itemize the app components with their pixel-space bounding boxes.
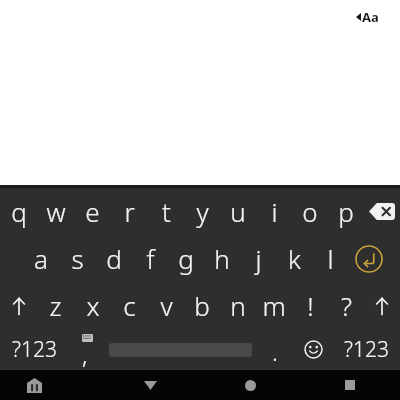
staticText: Aa	[362, 8, 379, 26]
staticText: e	[85, 194, 100, 229]
button[interactable]: j	[240, 235, 276, 282]
button[interactable]: s	[59, 235, 96, 282]
staticText: j	[255, 241, 262, 276]
staticText: g	[178, 241, 194, 276]
staticText: w	[46, 194, 66, 229]
staticText: x	[86, 288, 100, 323]
staticText: ?123	[344, 335, 389, 364]
button[interactable]: ,	[68, 329, 105, 370]
button[interactable]: p	[328, 188, 364, 235]
button[interactable]: i	[256, 188, 292, 235]
button[interactable]: v	[148, 282, 184, 329]
button[interactable]: w	[37, 188, 74, 235]
staticText: f	[146, 241, 155, 276]
staticText: q	[11, 194, 27, 229]
button[interactable]: Home	[200, 370, 300, 400]
button[interactable]: Enter	[348, 235, 389, 282]
button[interactable]: ?123	[0, 329, 68, 370]
button[interactable]: k	[276, 235, 312, 282]
button[interactable]: e	[74, 188, 111, 235]
staticText: h	[214, 241, 230, 276]
staticText: u	[230, 194, 246, 229]
staticText: y	[196, 194, 209, 229]
button[interactable]: Recent apps	[300, 370, 400, 400]
button[interactable]: m	[256, 282, 292, 329]
staticText: o	[302, 194, 318, 229]
button[interactable]: q	[0, 188, 37, 235]
staticText: !	[307, 288, 314, 323]
button[interactable]: Text size	[356, 8, 379, 26]
staticText: p	[338, 194, 354, 229]
button[interactable]: r	[111, 188, 148, 235]
staticText: t	[162, 194, 171, 229]
button[interactable]: .	[256, 329, 293, 370]
staticText: v	[160, 288, 173, 323]
button[interactable]: ?	[328, 282, 364, 329]
button[interactable]: b	[184, 282, 220, 329]
button[interactable]: f	[132, 235, 168, 282]
staticText: k	[288, 241, 301, 276]
staticText: ?123	[12, 335, 57, 364]
button[interactable]: d	[96, 235, 132, 282]
button[interactable]: Switch keyboard	[0, 370, 100, 400]
button[interactable]: y	[184, 188, 220, 235]
button[interactable]: !	[292, 282, 328, 329]
staticText: l	[327, 241, 334, 276]
button[interactable]: Emoji	[293, 329, 333, 370]
button[interactable]: Shift	[0, 282, 37, 329]
staticText: s	[71, 241, 84, 276]
button[interactable]: x	[74, 282, 111, 329]
button[interactable]: Shift	[364, 282, 400, 329]
button[interactable]: c	[111, 282, 148, 329]
button[interactable]: h	[204, 235, 240, 282]
staticText: z	[49, 288, 62, 323]
staticText: a	[34, 241, 48, 276]
button[interactable]: t	[148, 188, 184, 235]
staticText: b	[194, 288, 210, 323]
button[interactable]: o	[292, 188, 328, 235]
staticText: i	[271, 194, 278, 229]
staticText: n	[230, 288, 246, 323]
button[interactable]: Backspace	[364, 188, 400, 235]
button[interactable]: Back	[100, 370, 200, 400]
staticText: r	[124, 194, 135, 229]
staticText: d	[106, 241, 122, 276]
staticText: c	[123, 288, 136, 323]
staticText: ?	[341, 288, 352, 323]
button[interactable]: z	[37, 282, 74, 329]
button[interactable]: ?123	[333, 329, 400, 370]
button[interactable]: g	[168, 235, 204, 282]
button[interactable]: l	[312, 235, 348, 282]
button[interactable]: u	[220, 188, 256, 235]
button[interactable]: a	[22, 235, 59, 282]
staticText: m	[262, 288, 286, 323]
staticText: .	[272, 335, 278, 368]
button[interactable]: Space	[105, 329, 256, 370]
staticText: ,	[82, 338, 88, 371]
button[interactable]: n	[220, 282, 256, 329]
